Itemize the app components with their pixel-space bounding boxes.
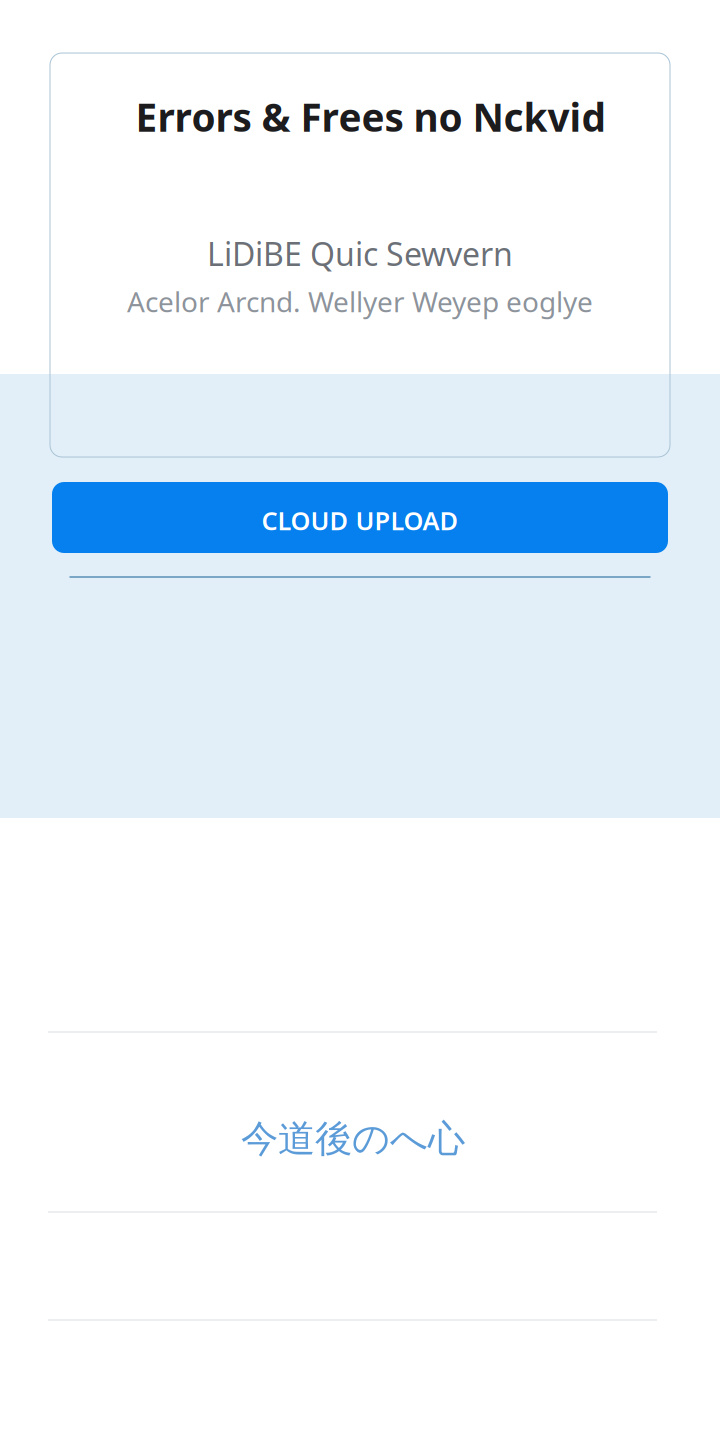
staticText: 今道後のへ心 [241, 1116, 465, 1162]
staticText: Acelor Arcnd. Wellyer Weyep eoglye [127, 283, 593, 320]
staticText: LiDiBE Quic Sewvern [207, 232, 513, 275]
staticText: Errors & Frees no Nckvid [135, 91, 605, 142]
button[interactable]: CLOUD UPLOAD [52, 482, 668, 553]
staticText: CLOUD UPLOAD [261, 504, 458, 537]
button[interactable]: 今道後のへ心 [241, 0, 479, 1162]
